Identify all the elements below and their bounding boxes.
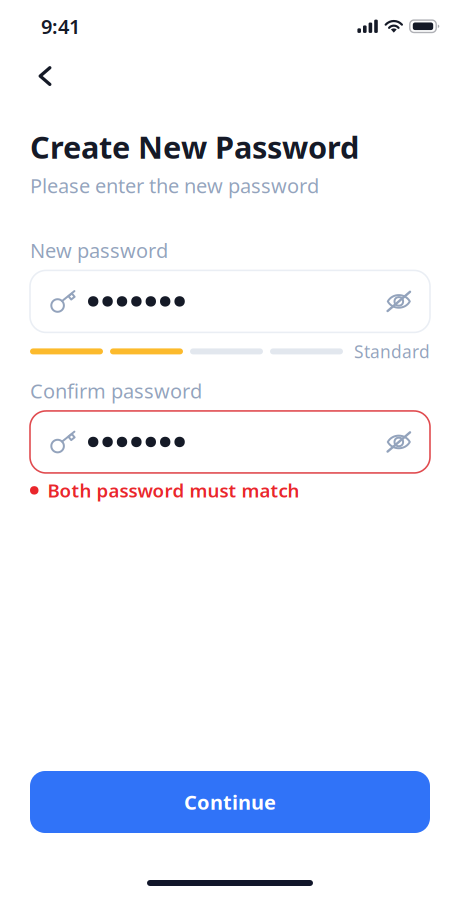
staticText: Both password must match <box>47 478 299 503</box>
staticText: 9:41 <box>41 13 80 40</box>
staticText: Continue <box>184 789 276 815</box>
button[interactable]: Show password <box>382 284 416 318</box>
staticText: New password <box>30 237 168 263</box>
staticText: Standard <box>354 340 430 363</box>
staticText: Confirm password <box>30 377 202 404</box>
button[interactable]: Back <box>24 46 66 98</box>
button[interactable]: Continue <box>30 771 430 833</box>
button[interactable]: Show password <box>382 425 416 459</box>
staticText: Please enter the new password <box>30 172 319 199</box>
staticText: Create New Password <box>30 127 359 167</box>
